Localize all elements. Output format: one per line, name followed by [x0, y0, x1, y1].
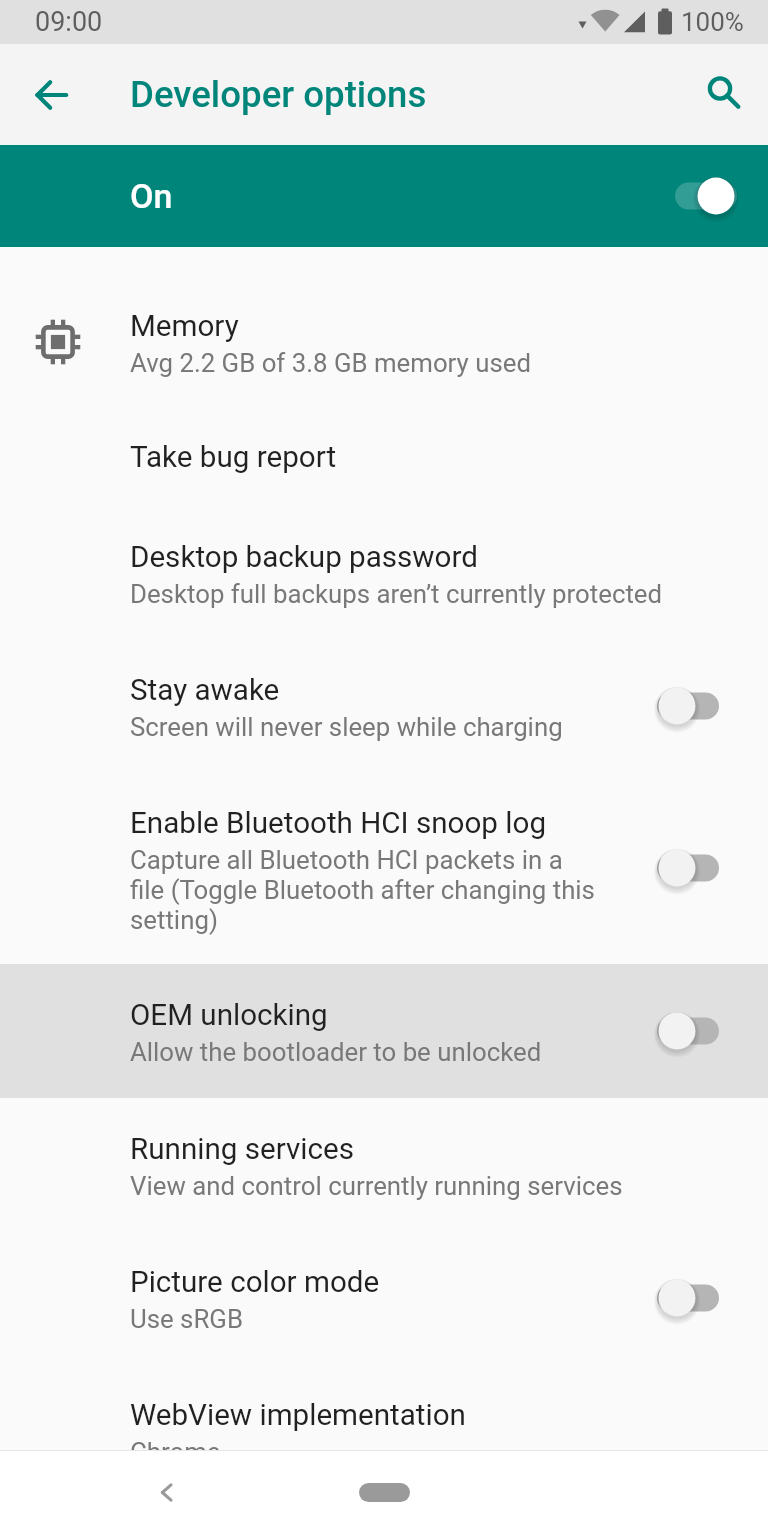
staticText: Capture all Bluetooth HCI packets in a f… [130, 845, 595, 935]
button[interactable]: Enable Bluetooth HCI snoop log [0, 772, 768, 964]
staticText: 09:00 [35, 6, 103, 38]
staticText: Take bug report [130, 440, 337, 475]
staticText: View and control currently running servi… [130, 1171, 623, 1201]
staticText: Running services [130, 1132, 354, 1167]
staticText: Stay awake [130, 673, 280, 708]
button[interactable]: OEM unlocking [0, 964, 768, 1098]
staticText: OEM unlocking [130, 998, 328, 1033]
staticText: Screen will never sleep while charging [130, 712, 563, 742]
button[interactable]: Home [359, 1483, 410, 1502]
button[interactable]: Stay awake [0, 639, 768, 772]
button[interactable]: Desktop backup password [0, 506, 768, 639]
button[interactable]: Search [667, 44, 768, 145]
staticText: Chrome [130, 1437, 221, 1467]
button[interactable]: Take bug report [0, 408, 768, 506]
button[interactable]: WebView implementation [0, 1364, 768, 1497]
staticText: WebView implementation [130, 1398, 466, 1433]
staticText: Use sRGB [130, 1304, 243, 1334]
staticText: Desktop backup password [130, 540, 478, 575]
button[interactable]: Navigate up [0, 44, 101, 145]
staticText: Developer options [130, 73, 427, 116]
button[interactable]: Back [135, 1463, 196, 1524]
staticText: Enable Bluetooth HCI snoop log [130, 806, 547, 841]
staticText: Allow the bootloader to be unlocked [130, 1037, 542, 1067]
staticText: 100% [681, 7, 744, 37]
staticText: Desktop full backups aren’t currently pr… [130, 579, 663, 609]
staticText: On [130, 176, 173, 216]
staticText: Avg 2.2 GB of 3.8 GB memory used [130, 348, 531, 378]
button[interactable]: On [0, 145, 768, 247]
button[interactable]: Picture color mode [0, 1231, 768, 1364]
button[interactable]: Running services [0, 1098, 768, 1231]
button[interactable]: Memory [0, 275, 768, 408]
staticText: Picture color mode [130, 1265, 380, 1300]
staticText: Memory [130, 309, 239, 344]
